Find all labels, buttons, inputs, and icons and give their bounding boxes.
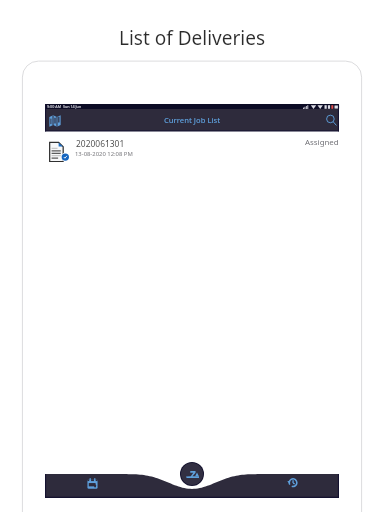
button[interactable]: Schedule <box>84 475 100 491</box>
button[interactable]: Start delivery <box>181 463 203 485</box>
button[interactable]: Map <box>47 113 63 129</box>
staticText: 13-08-2020 12:08 PM <box>75 150 133 158</box>
staticText: Assigned <box>305 137 339 148</box>
staticText: 2020061301 <box>76 138 125 150</box>
button[interactable]: History <box>284 474 300 490</box>
button[interactable]: Search <box>323 112 339 128</box>
staticText: List of Deliveries <box>0 25 384 51</box>
button[interactable]: 2020061301 <box>45 136 339 168</box>
staticText: Current Job List <box>164 115 221 125</box>
staticText: 9:00 AM Sun 14 Jun <box>47 104 82 109</box>
